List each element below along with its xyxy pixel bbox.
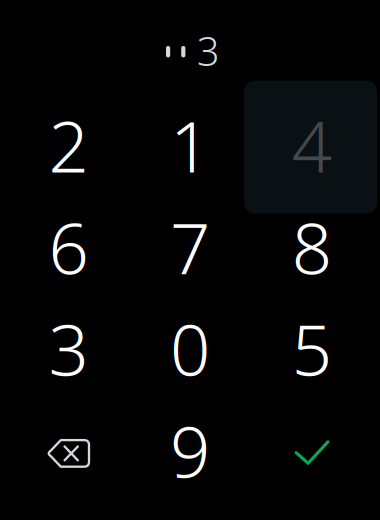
- staticText: 5: [292, 301, 332, 395]
- staticText: 4: [292, 98, 332, 192]
- button[interactable]: 7: [129, 196, 251, 298]
- button[interactable]: 5: [251, 297, 373, 399]
- staticText: 3: [48, 301, 88, 395]
- button[interactable]: 3: [7, 297, 129, 399]
- staticText: 7: [170, 200, 210, 294]
- button[interactable]: 0: [129, 297, 251, 399]
- staticText: 9: [170, 403, 210, 497]
- button[interactable]: 1: [129, 94, 251, 196]
- button[interactable]: 2: [7, 94, 129, 196]
- button[interactable]: 4: [251, 94, 373, 196]
- button[interactable]: 6: [7, 196, 129, 298]
- staticText: 2: [48, 98, 88, 192]
- staticText: 1: [170, 98, 210, 192]
- staticText: 0: [170, 301, 210, 395]
- staticText: 8: [292, 200, 332, 294]
- button[interactable]: Confirm: [251, 399, 373, 501]
- button[interactable]: 9: [129, 399, 251, 501]
- staticText: 6: [48, 200, 88, 294]
- button[interactable]: 8: [251, 196, 373, 298]
- button[interactable]: Delete: [7, 399, 129, 501]
- staticText: 3: [197, 24, 220, 77]
